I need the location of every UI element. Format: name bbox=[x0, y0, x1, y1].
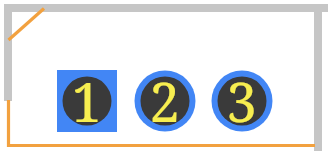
button[interactable]: PCB footprint preview, 3 pin connector bbox=[0, 0, 332, 155]
